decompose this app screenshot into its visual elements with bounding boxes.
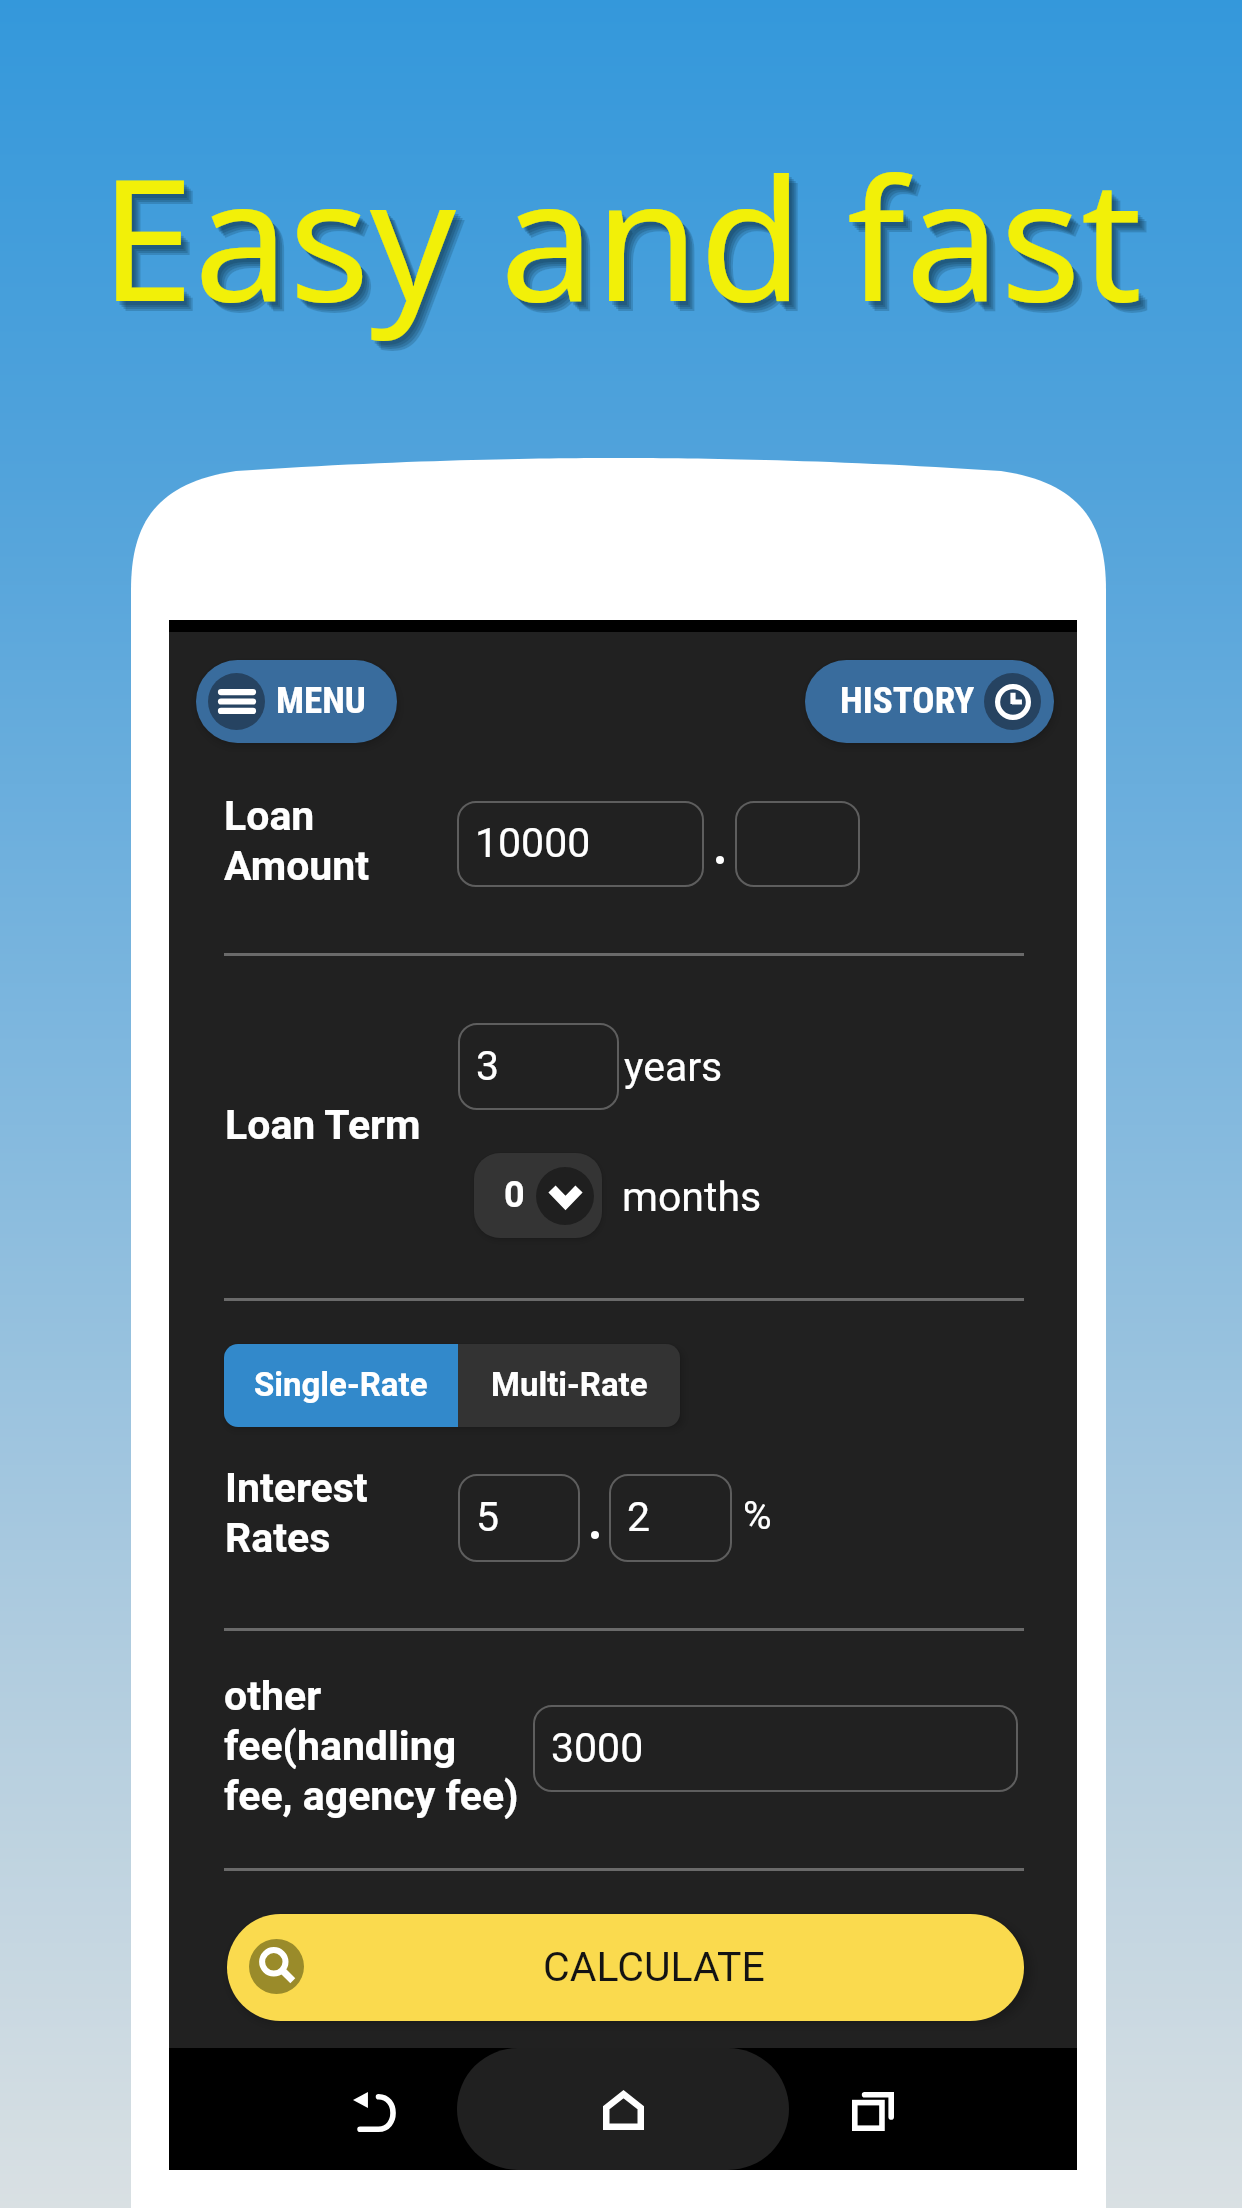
staticText: HISTORY	[840, 679, 975, 722]
staticText: 2	[627, 1493, 651, 1541]
button[interactable]: MENU	[196, 660, 397, 743]
button[interactable]: CALCULATE	[227, 1914, 1024, 2021]
button[interactable]: 10000	[457, 801, 704, 887]
staticText: Loan Term	[225, 1101, 421, 1149]
staticText: MENU	[276, 679, 367, 722]
staticText: 5	[476, 1493, 500, 1541]
button[interactable]: 3000	[533, 1705, 1018, 1792]
staticText: Single-Rate	[254, 1365, 428, 1404]
staticText: Easy and fast	[7, 128, 1242, 358]
staticText: 3	[476, 1042, 500, 1090]
staticText: 3000	[551, 1724, 644, 1772]
staticText: Easy and fast	[0, 120, 1242, 350]
button[interactable]: Multi-Rate	[458, 1344, 680, 1427]
button[interactable]: Recent apps	[842, 2080, 904, 2142]
staticText: months	[622, 1173, 762, 1221]
button[interactable]: 3	[458, 1023, 619, 1110]
staticText: Loan Amount	[224, 792, 370, 890]
staticText: CALCULATE	[543, 1943, 765, 1991]
staticText: Easy and fast	[5, 126, 1242, 356]
staticText: Easy and fast	[3, 124, 1242, 354]
button[interactable]: Loan amount decimals	[735, 801, 860, 887]
button[interactable]: 2	[609, 1474, 732, 1562]
staticText: years	[624, 1043, 723, 1091]
staticText: Easy and fast	[9, 130, 1242, 360]
button[interactable]: Single-Rate	[224, 1344, 458, 1427]
staticText: other fee(handling fee, agency fee)	[224, 1672, 519, 1820]
button[interactable]: Back	[345, 2082, 405, 2142]
staticText: %	[743, 1493, 772, 1539]
button[interactable]: 0	[474, 1153, 602, 1238]
staticText: Multi-Rate	[491, 1365, 648, 1404]
button[interactable]: Home	[592, 2079, 654, 2141]
staticText: 10000	[475, 819, 591, 867]
button[interactable]: 5	[458, 1474, 580, 1562]
staticText: 0	[504, 1174, 525, 1216]
button[interactable]: HISTORY	[805, 660, 1054, 743]
staticText: Interest Rates	[225, 1464, 368, 1562]
